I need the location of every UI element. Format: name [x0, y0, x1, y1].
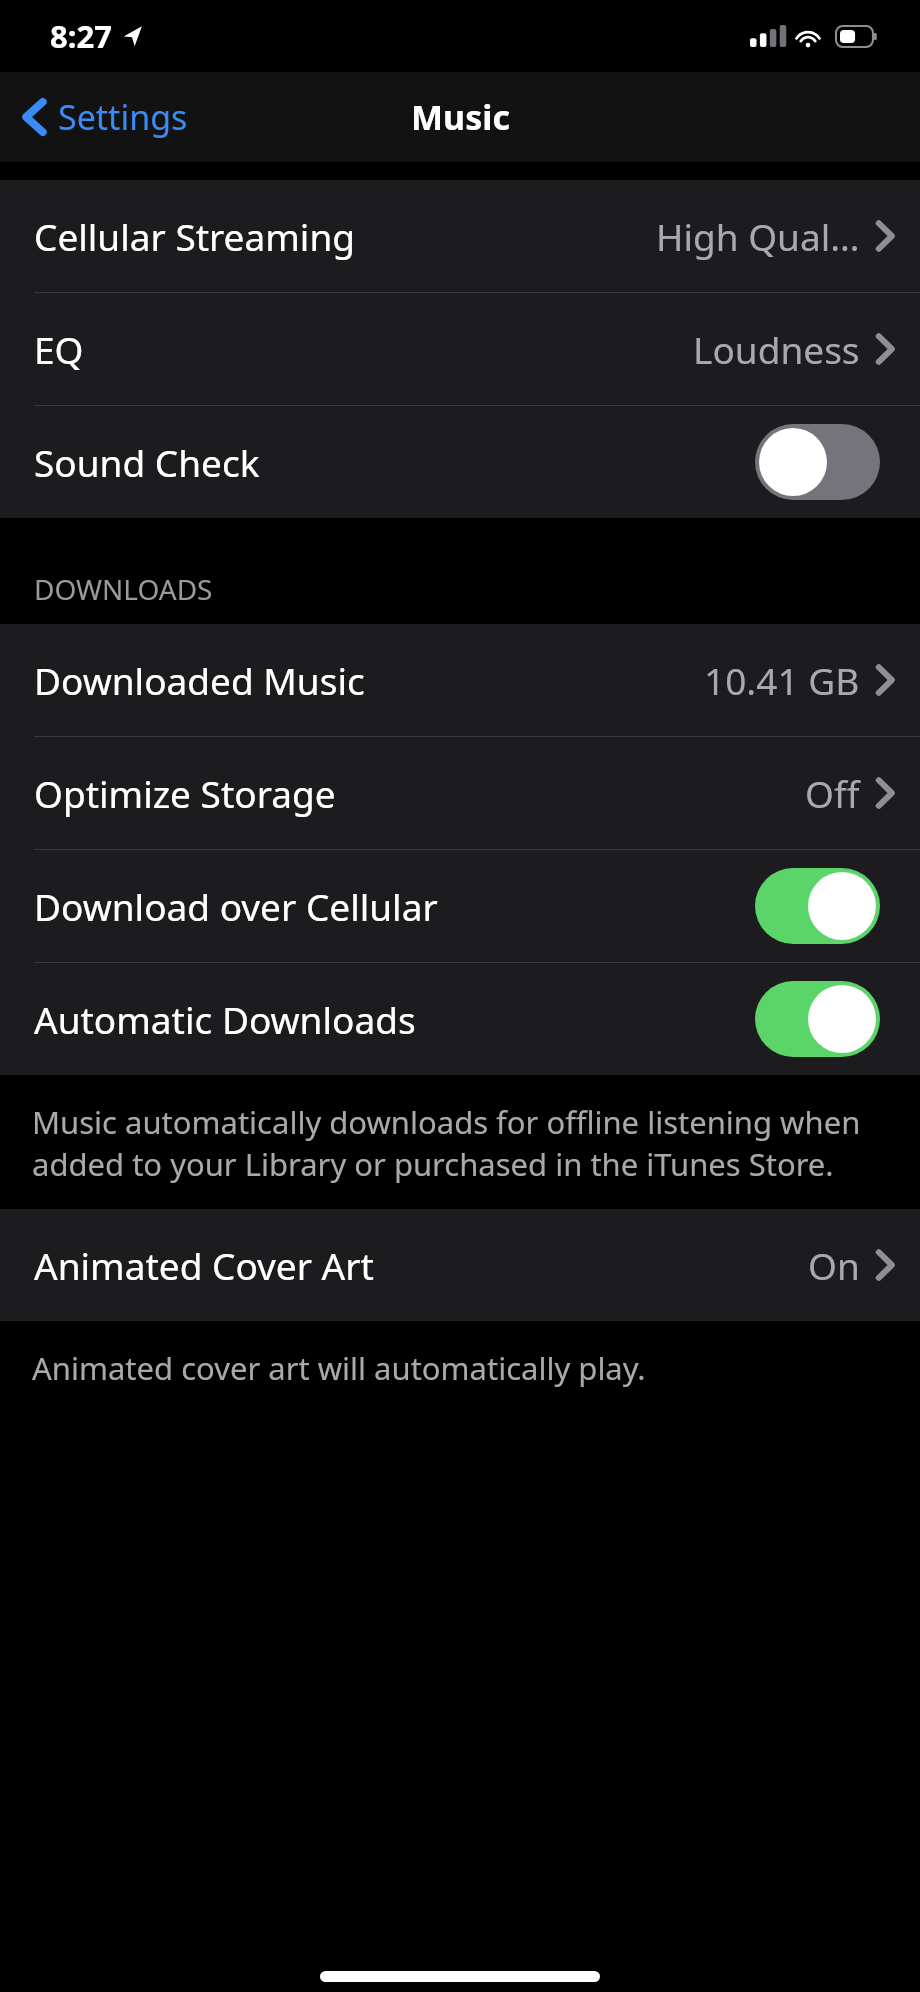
staticText: Music automatically downloads for offlin…: [32, 1101, 876, 1185]
staticText: Sound Check: [34, 437, 260, 487]
button[interactable]: Optimize Storage: [0, 737, 920, 849]
button[interactable]: Off: [755, 424, 880, 500]
staticText: DOWNLOADS: [34, 570, 213, 608]
staticText: Automatic Downloads: [34, 994, 416, 1044]
staticText: Downloaded Music: [34, 655, 365, 705]
button[interactable]: Sound Check: [0, 406, 920, 518]
button[interactable]: On: [755, 868, 880, 944]
staticText: Cellular Streaming: [34, 211, 356, 261]
button[interactable]: Automatic Downloads: [0, 963, 920, 1075]
button[interactable]: Downloaded Music: [0, 624, 920, 736]
staticText: Off: [805, 768, 860, 818]
button[interactable]: EQ: [0, 293, 920, 405]
staticText: Animated Cover Art: [34, 1240, 374, 1290]
staticText: Animated cover art will automatically pl…: [32, 1347, 876, 1389]
staticText: On: [808, 1240, 860, 1290]
button[interactable]: Cellular Streaming: [0, 180, 920, 292]
staticText: High Qual…: [656, 211, 860, 261]
staticText: Music: [411, 94, 510, 140]
staticText: 10.41 GB: [704, 655, 860, 705]
staticText: Optimize Storage: [34, 768, 336, 818]
button[interactable]: Settings: [14, 88, 196, 146]
button[interactable]: Download over Cellular: [0, 850, 920, 962]
button[interactable]: Animated Cover Art: [0, 1209, 920, 1321]
staticText: Loudness: [693, 324, 860, 374]
button[interactable]: On: [755, 981, 880, 1057]
staticText: Download over Cellular: [34, 881, 438, 931]
staticText: EQ: [34, 324, 84, 374]
staticText: 8:27: [50, 15, 112, 57]
staticText: Settings: [58, 94, 188, 140]
